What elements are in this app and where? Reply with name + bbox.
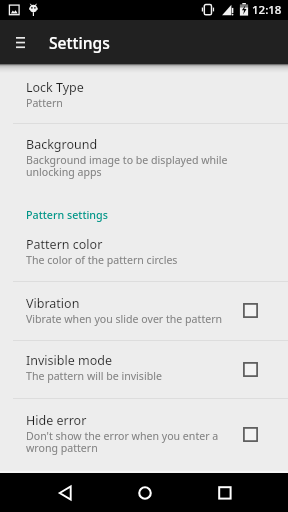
button[interactable]: Vibration xyxy=(0,282,288,340)
staticText: Settings xyxy=(49,32,110,53)
button[interactable]: Recent apps xyxy=(204,473,245,512)
staticText: Don't show the error when you enter a wr… xyxy=(26,429,219,455)
button[interactable]: Back xyxy=(44,473,85,512)
staticText: Vibrate when you slide over the pattern xyxy=(26,312,223,326)
button[interactable]: Pattern settings xyxy=(0,208,288,224)
button[interactable]: Background xyxy=(0,124,288,196)
button[interactable]: Hide error xyxy=(0,399,288,471)
staticText: The color of the pattern circles xyxy=(26,253,178,267)
staticText: 12:18 xyxy=(252,2,282,18)
staticText: Lock Type xyxy=(26,79,84,96)
button[interactable]: Lock Type xyxy=(0,64,288,123)
staticText: Invisible mode xyxy=(26,352,112,369)
staticText: Hide error xyxy=(26,412,87,429)
staticText: Pattern color xyxy=(26,236,103,253)
button[interactable]: Invisible mode xyxy=(0,341,288,399)
staticText: Vibration xyxy=(26,295,80,312)
staticText: Pattern xyxy=(26,96,63,110)
staticText: Background image to be displayed while u… xyxy=(26,153,228,179)
staticText: The pattern will be invisible xyxy=(26,369,162,383)
button[interactable]: Open navigation menu xyxy=(4,26,36,58)
staticText: Pattern settings xyxy=(26,208,108,223)
button[interactable]: Pattern color xyxy=(0,225,288,281)
button[interactable]: Home xyxy=(124,473,165,512)
staticText: Background xyxy=(26,136,98,153)
